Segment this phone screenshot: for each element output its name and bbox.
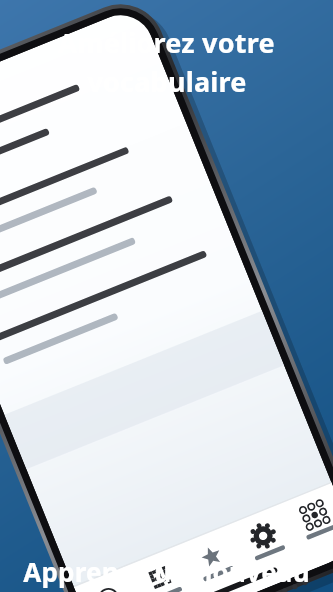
- staticText: Améliorez votre: [58, 24, 275, 61]
- staticText: mot tous les jours: [48, 591, 285, 592]
- staticText: vocabulaire: [87, 63, 247, 100]
- staticText: Apprenez un nouveau: [23, 554, 310, 589]
